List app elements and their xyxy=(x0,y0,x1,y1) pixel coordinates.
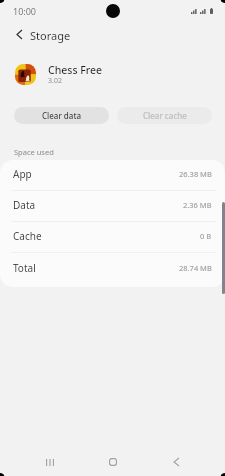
staticText: Storage xyxy=(30,28,71,43)
button[interactable]: Home xyxy=(93,448,133,476)
button[interactable]: Total xyxy=(0,253,225,286)
button[interactable]: App xyxy=(0,160,225,191)
staticText: Cache xyxy=(13,229,42,243)
button[interactable]: Clear data xyxy=(14,107,109,124)
staticText: App xyxy=(13,167,32,181)
staticText: 3.02 xyxy=(48,76,62,86)
staticText: 2.36 MB xyxy=(183,200,212,210)
staticText: Total xyxy=(13,261,36,275)
staticText: Chess Free xyxy=(48,63,103,77)
staticText: Space used xyxy=(14,147,54,157)
button[interactable]: Clear cache xyxy=(117,107,212,124)
staticText: 10:00 xyxy=(13,5,37,17)
staticText: 0 B xyxy=(200,231,212,241)
staticText: 26.38 MB xyxy=(179,169,212,179)
staticText: 28.74 MB xyxy=(179,263,212,273)
staticText: Data xyxy=(13,198,36,212)
button[interactable]: Back xyxy=(8,22,28,46)
staticText: Clear data xyxy=(42,110,82,121)
staticText: Clear cache xyxy=(143,110,187,121)
button[interactable]: Data xyxy=(0,191,225,222)
button[interactable]: Cache xyxy=(0,222,225,253)
button[interactable]: Recent apps xyxy=(30,448,70,476)
button[interactable]: Back xyxy=(156,448,196,476)
